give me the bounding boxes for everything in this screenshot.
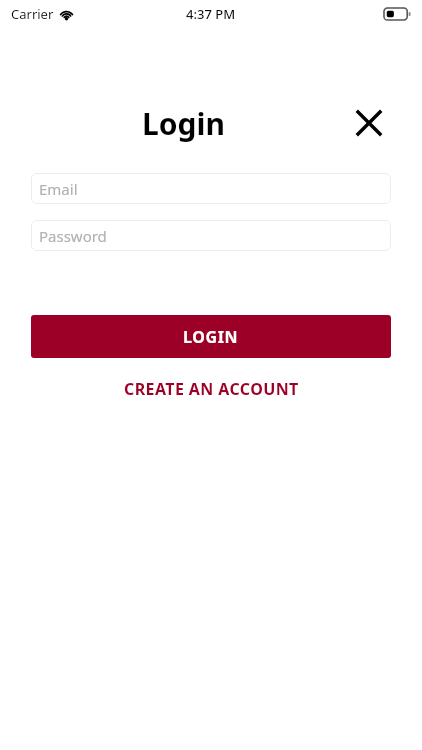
- button[interactable]: Close: [353, 107, 385, 139]
- staticText: Carrier: [11, 5, 54, 23]
- staticText: Login: [142, 103, 225, 144]
- staticText: LOGIN: [183, 326, 239, 348]
- staticText: Password: [39, 226, 107, 246]
- button[interactable]: LOGIN: [31, 315, 391, 358]
- button[interactable]: Password: [31, 220, 391, 251]
- staticText: 4:37 PM: [186, 5, 236, 23]
- staticText: CREATE AN ACCOUNT: [124, 378, 299, 400]
- button[interactable]: Email: [31, 173, 391, 204]
- button[interactable]: CREATE AN ACCOUNT: [31, 372, 391, 406]
- staticText: Email: [39, 179, 78, 199]
